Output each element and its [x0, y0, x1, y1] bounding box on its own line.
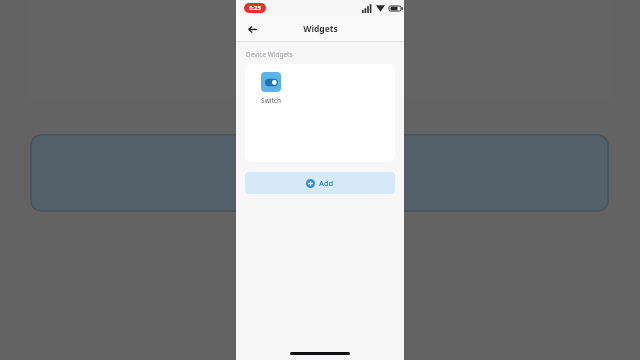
button[interactable]: Add — [245, 172, 395, 194]
button[interactable]: Switch — [254, 72, 288, 105]
staticText: Switch — [261, 96, 281, 105]
staticText: Widgets — [303, 23, 338, 35]
staticText: 6:25 — [249, 4, 261, 12]
staticText: Add — [319, 178, 334, 188]
staticText: Device Widgets — [246, 50, 293, 59]
button[interactable]: Back — [244, 21, 260, 37]
